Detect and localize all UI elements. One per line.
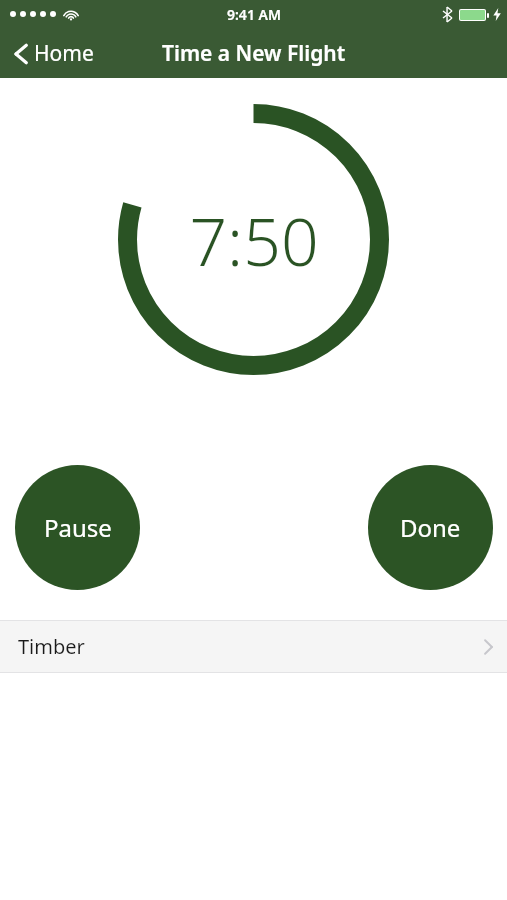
staticText: 9:41 AM xyxy=(227,5,281,24)
button[interactable]: Home xyxy=(0,33,106,74)
other: Open Timber xyxy=(484,639,493,655)
staticText: Time a New Flight xyxy=(162,39,346,68)
staticText: 7:50 xyxy=(189,195,319,285)
button[interactable]: Pause xyxy=(15,465,140,590)
staticText: Home xyxy=(34,39,94,68)
staticText: Pause xyxy=(44,511,112,544)
button[interactable]: Timber xyxy=(0,621,507,672)
staticText: Timber xyxy=(18,633,85,660)
button[interactable]: Done xyxy=(368,465,493,590)
staticText: Done xyxy=(400,511,461,544)
